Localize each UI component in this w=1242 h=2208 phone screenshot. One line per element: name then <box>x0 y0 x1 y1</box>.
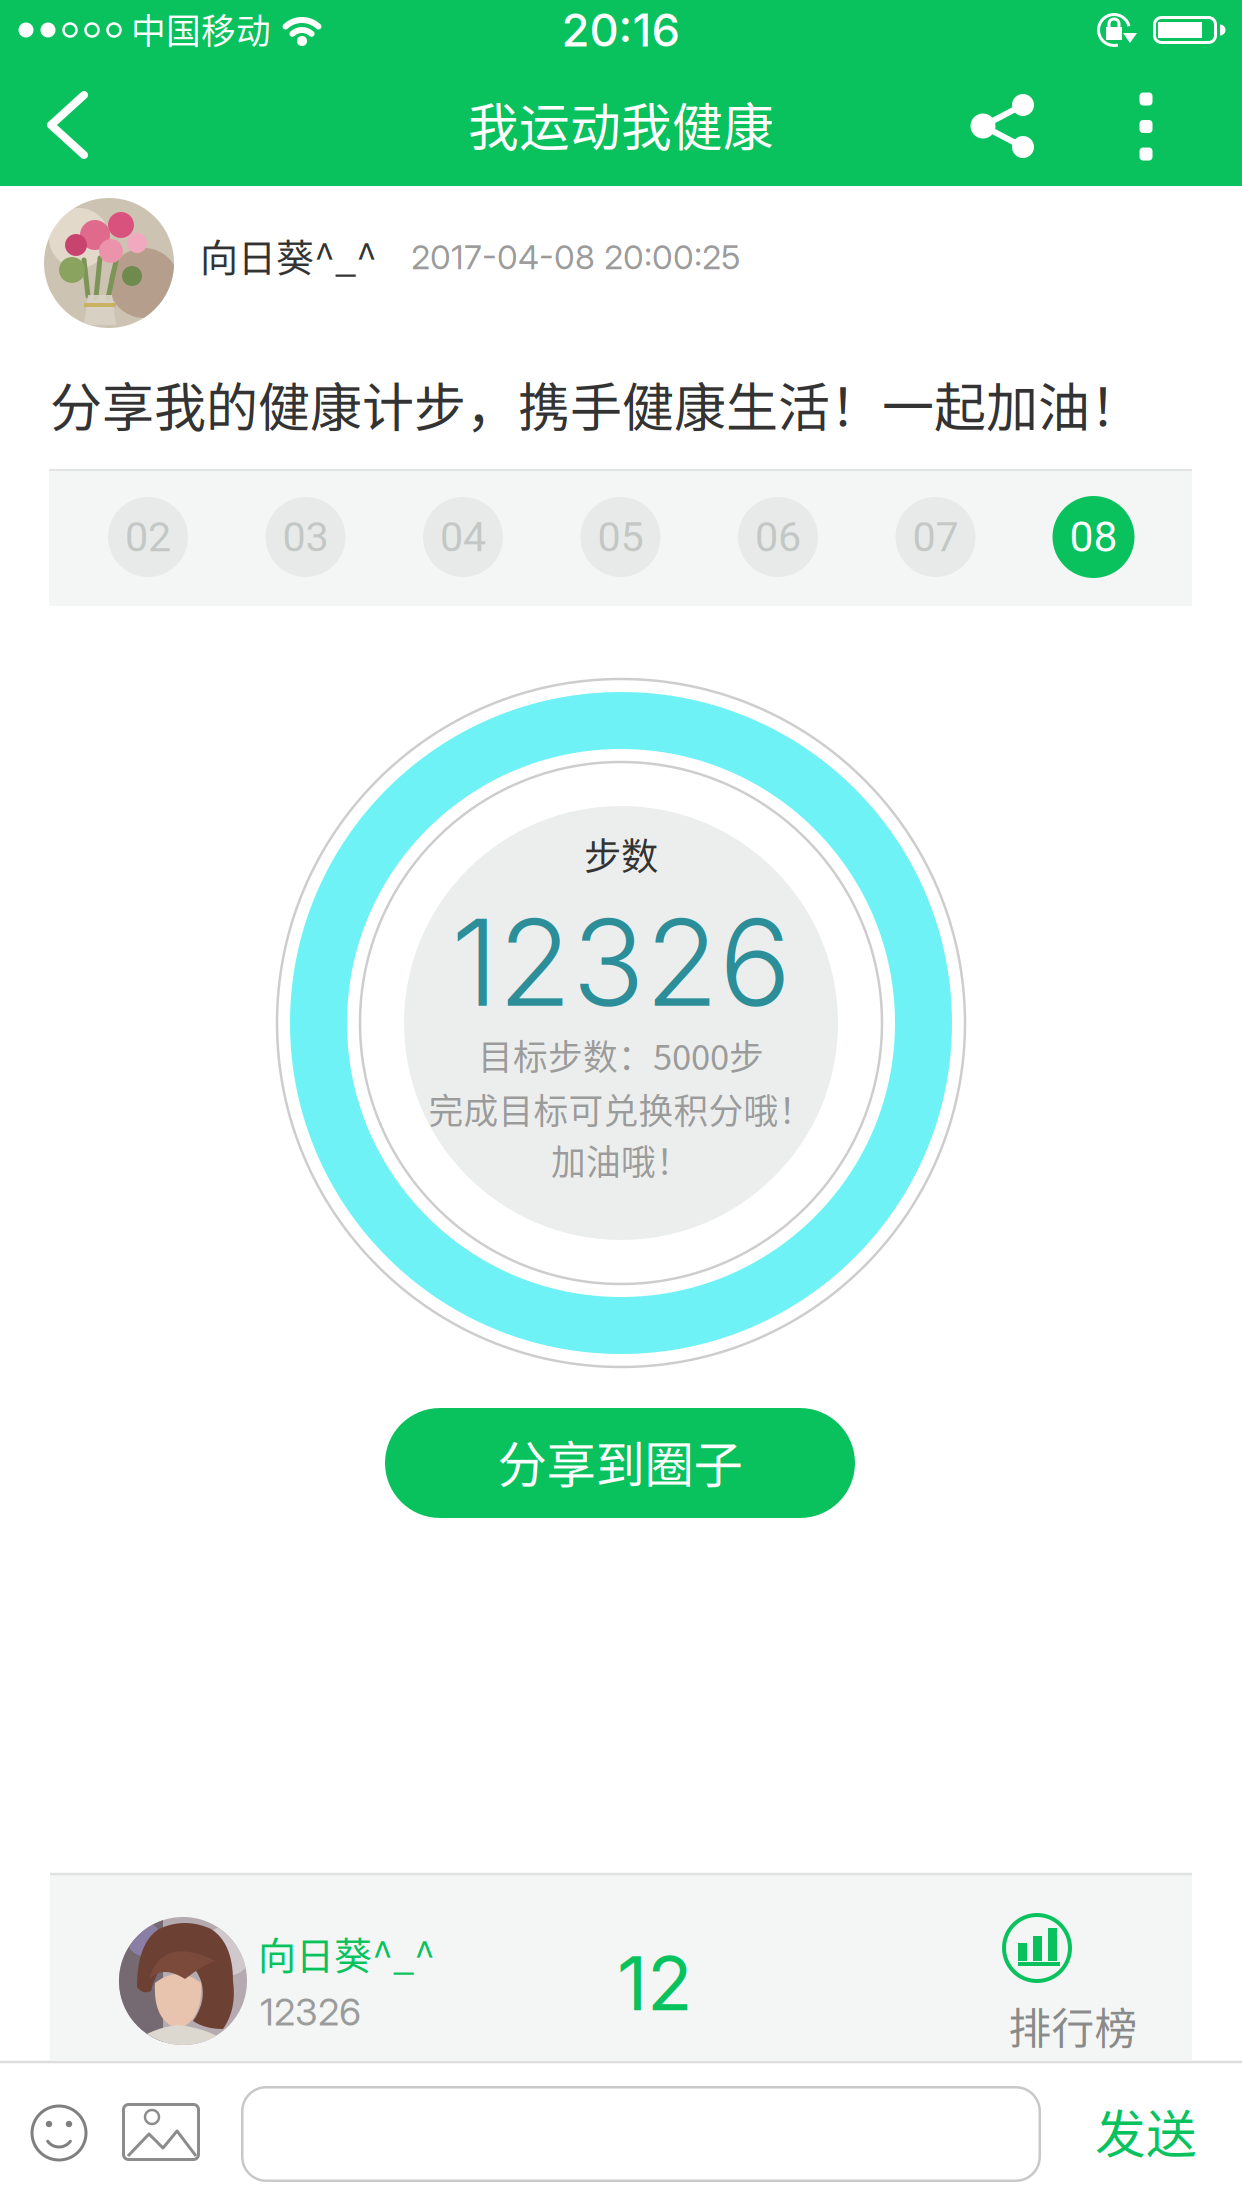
staticText: 分享到圈子 <box>497 1425 742 1497</box>
staticText: 02 <box>125 513 171 561</box>
staticText: 20:16 <box>561 3 680 57</box>
staticText: 我运动我健康 <box>468 87 774 161</box>
staticText: 08 <box>1069 512 1117 562</box>
staticText: 发送 <box>1095 2094 1197 2168</box>
staticText: 加油哦！ <box>551 1135 691 1185</box>
staticText: 排行榜 <box>1008 1995 1137 2057</box>
staticText: 步数 <box>584 827 658 881</box>
staticText: 04 <box>440 513 486 561</box>
staticText: 12 <box>617 1938 693 2028</box>
staticText: 12326 <box>451 889 791 1035</box>
staticText: 目标步数：5000步 <box>478 1030 764 1080</box>
staticText: 完成目标可兑换积分哦！ <box>428 1084 813 1134</box>
staticText: 06 <box>755 513 801 561</box>
staticText: 分享我的健康计步，携手健康生活！一起加油！ <box>50 366 1142 442</box>
staticText: 向日葵^_^ <box>200 227 377 282</box>
staticText: 03 <box>282 513 328 561</box>
staticText: 向日葵^_^ <box>258 1925 435 1980</box>
staticText: 05 <box>597 513 643 561</box>
staticText: 2017-04-08 20:00:25 <box>411 237 740 277</box>
staticText: 中国移动 <box>131 4 271 54</box>
staticText: 12326 <box>260 1989 361 2035</box>
staticText: 07 <box>912 513 958 561</box>
